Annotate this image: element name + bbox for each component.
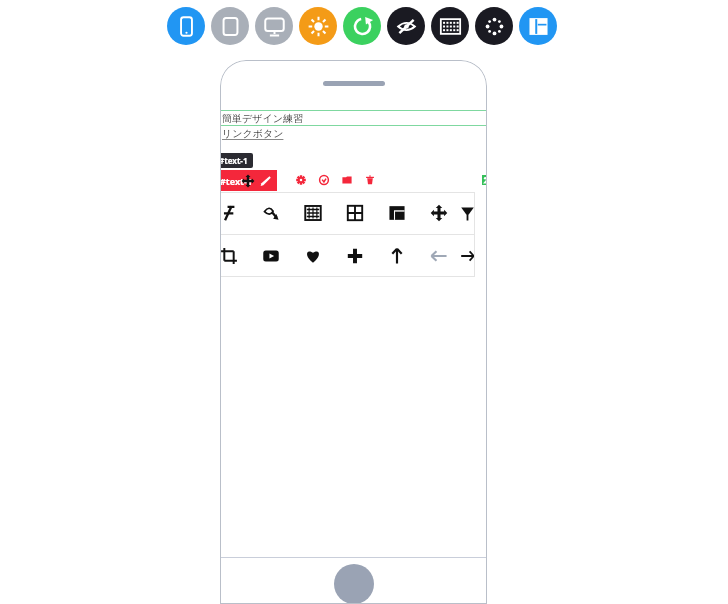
button[interactable]: Reload <box>343 7 381 45</box>
staticText: 簡単デザイン練習 <box>222 112 303 125</box>
staticText: #text-1 <box>220 155 248 166</box>
button[interactable]: リンクボタン <box>220 126 487 141</box>
button[interactable]: Folder <box>338 171 356 189</box>
button[interactable]: Tablet view <box>211 7 249 45</box>
button[interactable]: Desktop view <box>255 7 293 45</box>
button[interactable]: Add <box>334 235 376 277</box>
staticText: リンクボタン <box>222 127 284 140</box>
button[interactable]: Fill color <box>250 192 292 234</box>
button[interactable]: Filter <box>460 192 475 234</box>
button[interactable]: Back <box>418 235 460 277</box>
button[interactable]: Move element <box>240 173 255 188</box>
button[interactable]: Font <box>220 192 250 234</box>
button[interactable]: Forward <box>460 235 475 277</box>
button[interactable]: Image block <box>476 169 487 190</box>
button[interactable]: Layout <box>519 7 557 45</box>
button[interactable]: Home <box>334 564 374 604</box>
staticText: #text-1 <box>220 175 253 187</box>
button[interactable]: Favorite <box>292 235 334 277</box>
button[interactable]: Loading <box>475 7 513 45</box>
button[interactable]: Table <box>292 192 334 234</box>
button[interactable]: Move up <box>376 235 418 277</box>
button[interactable]: Mobile view <box>167 7 205 45</box>
button[interactable]: Video <box>250 235 292 277</box>
button[interactable]: Brightness <box>299 7 337 45</box>
button[interactable]: 簡単デザイン練習 <box>220 110 487 126</box>
button[interactable]: Delete <box>361 171 379 189</box>
button[interactable]: Crop <box>220 235 250 277</box>
button[interactable]: Grid <box>334 192 376 234</box>
button[interactable]: History <box>315 171 333 189</box>
button[interactable]: Hide preview <box>387 7 425 45</box>
button[interactable]: Move <box>418 192 460 234</box>
button[interactable]: Keyboard <box>431 7 469 45</box>
button[interactable]: Layout <box>376 192 418 234</box>
button[interactable]: #text-1 <box>220 170 277 191</box>
button[interactable]: Settings <box>292 171 310 189</box>
